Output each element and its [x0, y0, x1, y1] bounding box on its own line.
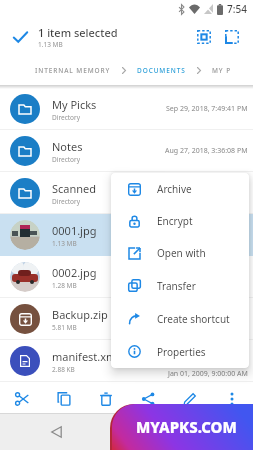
staticText: Archive — [157, 182, 192, 196]
staticText: 0001.jpg — [52, 223, 97, 238]
staticText: 1 item selected — [38, 25, 118, 40]
staticText: 1.13 MB — [52, 239, 77, 248]
staticText: Backup.zip — [52, 307, 108, 322]
staticText: Scanned — [52, 181, 97, 196]
staticText: My Picks — [52, 97, 97, 112]
staticText: Transfer — [157, 279, 196, 293]
button[interactable]: My Picks — [0, 88, 253, 130]
button[interactable]: Transfer — [111, 269, 249, 302]
button[interactable] — [0, 384, 43, 413]
button[interactable] — [193, 26, 215, 48]
staticText: 5.81 MB — [52, 323, 77, 332]
button[interactable]: Open with — [111, 237, 249, 269]
button[interactable]: Notes — [0, 130, 253, 172]
staticText: 2.88 KB — [52, 365, 75, 374]
staticText: Sep 29, 2018, 7:49:41 PM — [166, 104, 248, 114]
button[interactable] — [10, 27, 30, 47]
staticText: MYAPKS.COM — [136, 417, 237, 437]
button[interactable]: Properties — [111, 335, 249, 368]
button[interactable]: INTERNAL MEMORY — [35, 66, 111, 75]
staticText: Encrypt — [157, 214, 193, 228]
staticText: 1.28 MB — [52, 281, 77, 290]
staticText: Directory — [52, 113, 81, 122]
staticText: 0002.jpg — [52, 265, 97, 280]
button[interactable]: DOCUMENTS — [137, 66, 186, 75]
button[interactable]: MY P — [212, 66, 232, 75]
staticText: Properties — [157, 345, 206, 359]
staticText: Jan 01, 2009, 9:00:00 AM — [168, 369, 248, 379]
button[interactable]: Backup.zip — [0, 298, 253, 340]
button[interactable] — [127, 384, 169, 413]
staticText: Create shortcut — [157, 312, 230, 326]
staticText: Directory — [52, 155, 81, 164]
staticText: 1.13 MB — [38, 40, 63, 49]
staticText: Aug 27, 2018, 3:36:08 PM — [165, 146, 248, 156]
button[interactable]: Encrypt — [111, 205, 249, 237]
button[interactable] — [46, 422, 66, 442]
button[interactable] — [85, 384, 127, 413]
staticText: Directory — [52, 197, 81, 206]
staticText: manifest.xml — [52, 349, 120, 364]
button[interactable] — [43, 384, 85, 413]
button[interactable]: Archive — [111, 173, 249, 205]
staticText: 7:54 — [227, 2, 247, 16]
button[interactable]: Create shortcut — [111, 302, 249, 335]
staticText: Notes — [52, 139, 83, 154]
button[interactable]: MYAPKS.COM — [112, 404, 253, 450]
button[interactable] — [169, 384, 211, 413]
button[interactable] — [211, 384, 253, 413]
button[interactable]: Scanned — [0, 172, 253, 214]
button[interactable]: 0002.jpg — [0, 256, 253, 298]
staticText: Open with — [157, 246, 206, 260]
button[interactable] — [221, 26, 243, 48]
button[interactable]: 0001.jpg — [0, 214, 253, 256]
button[interactable]: manifest.xml — [0, 340, 253, 382]
